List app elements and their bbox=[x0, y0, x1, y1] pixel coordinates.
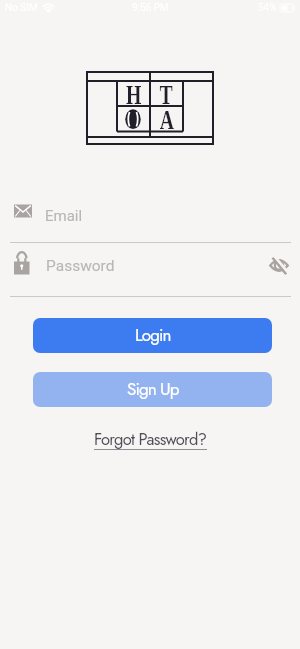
staticText: T bbox=[160, 80, 173, 105]
staticText: 54% bbox=[258, 2, 277, 14]
staticText: Email bbox=[45, 207, 83, 225]
staticText: Sign Up bbox=[127, 377, 179, 402]
button[interactable]: Sign Up bbox=[33, 372, 272, 407]
staticText: A bbox=[160, 105, 174, 131]
staticText: Forgot Password? bbox=[94, 427, 207, 451]
button[interactable] bbox=[0, 198, 300, 232]
button[interactable]: Login bbox=[33, 318, 272, 353]
button[interactable]: Forgot Password? bbox=[94, 427, 207, 452]
button[interactable] bbox=[0, 250, 300, 284]
staticText: Login bbox=[135, 323, 171, 348]
staticText: 9:56 PM bbox=[132, 2, 169, 14]
button[interactable] bbox=[268, 255, 290, 276]
staticText: H bbox=[126, 80, 142, 105]
staticText: No SIM bbox=[5, 2, 38, 14]
staticText: Password bbox=[46, 257, 115, 275]
